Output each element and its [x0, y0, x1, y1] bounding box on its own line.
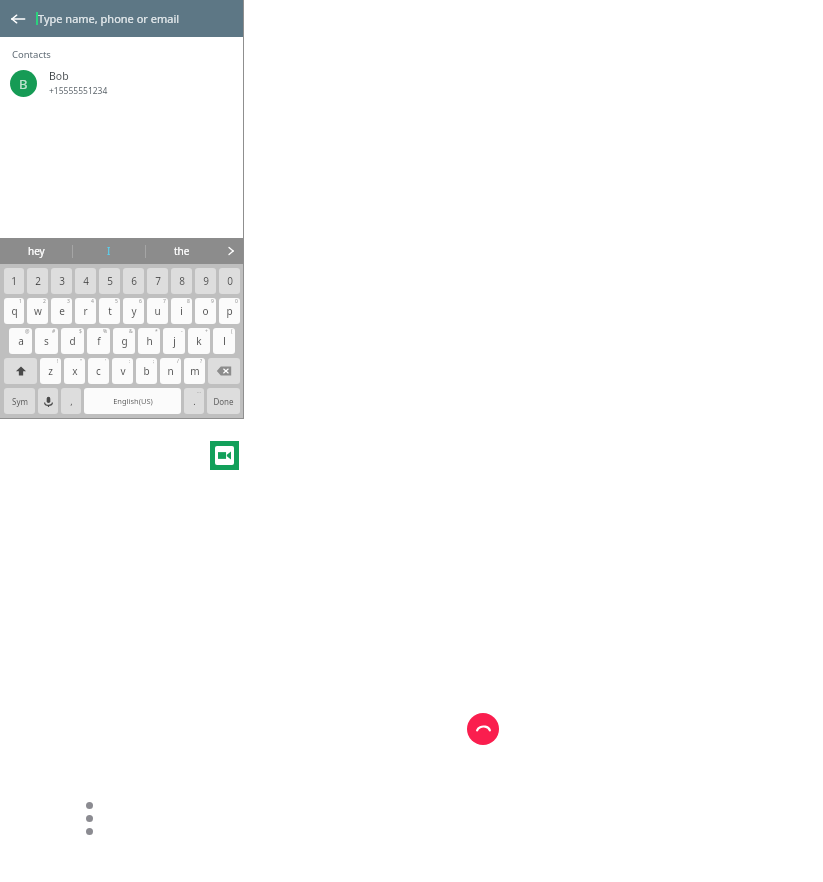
button[interactable]: ; [136, 358, 157, 384]
staticText: # [52, 328, 56, 335]
button[interactable]: $ [61, 328, 84, 354]
staticText: 5 [107, 274, 113, 288]
button[interactable]: / [160, 358, 181, 384]
staticText: m [190, 364, 200, 378]
button[interactable]: 6 [123, 298, 144, 324]
button[interactable]: - [163, 328, 185, 354]
button[interactable]: Sym [4, 388, 35, 414]
staticText: & [129, 328, 133, 335]
staticText: 3 [67, 298, 70, 305]
button[interactable]: 9 [195, 298, 216, 324]
button[interactable]: 5 [99, 298, 120, 324]
staticText: @ [25, 328, 30, 335]
button[interactable]: 8 [171, 298, 192, 324]
button[interactable]: Back [0, 1, 36, 37]
button[interactable]: Backspace [208, 358, 240, 384]
staticText: Sym [12, 396, 28, 407]
staticText: 0 [235, 298, 238, 305]
staticText: / [177, 358, 179, 365]
staticText: s [44, 334, 49, 348]
button[interactable]: 1 [4, 298, 24, 324]
button[interactable]: Type name, phone or email [36, 0, 244, 37]
staticText: ' [105, 358, 107, 365]
staticText: v [120, 364, 126, 378]
button[interactable]: @ [9, 328, 32, 354]
button[interactable]: ... [184, 388, 204, 414]
staticText: +15555551234 [49, 85, 108, 97]
staticText: i [180, 304, 183, 318]
button[interactable]: Done [207, 388, 240, 414]
staticText: k [196, 334, 202, 348]
staticText: the [174, 244, 190, 258]
staticText: e [59, 304, 65, 318]
button[interactable]: + [188, 328, 210, 354]
button[interactable]: % [87, 328, 110, 354]
button[interactable]: More options [79, 799, 100, 838]
button[interactable]: 7 [147, 268, 168, 294]
button[interactable]: 8 [171, 268, 192, 294]
staticText: z [48, 364, 53, 378]
button[interactable]: & [113, 328, 135, 354]
button[interactable]: Voice input [38, 388, 58, 414]
staticText: - [181, 328, 183, 335]
staticText: b [143, 364, 150, 378]
staticText: Bob [49, 69, 69, 83]
button[interactable]: Shift [4, 358, 37, 384]
button[interactable]: 0 [219, 268, 240, 294]
staticText: 2 [43, 298, 46, 305]
button[interactable]: 1 [4, 268, 24, 294]
button[interactable]: , [61, 388, 81, 414]
button[interactable]: * [138, 328, 160, 354]
button[interactable]: 2 [27, 298, 48, 324]
button[interactable]: I [73, 238, 145, 264]
staticText: % [103, 328, 108, 335]
staticText: English(US) [113, 396, 153, 406]
button[interactable]: 7 [147, 298, 168, 324]
button[interactable]: More suggestions [218, 238, 244, 264]
staticText: 3 [59, 274, 65, 288]
staticText: h [146, 334, 153, 348]
staticText: c [96, 364, 101, 378]
staticText: 5 [115, 298, 118, 305]
button[interactable]: Video call [210, 441, 239, 470]
button[interactable]: 9 [195, 268, 216, 294]
staticText: 1 [19, 298, 22, 305]
button[interactable]: 4 [75, 268, 96, 294]
staticText: w [34, 304, 42, 318]
button[interactable]: the [146, 238, 218, 264]
button[interactable]: 3 [51, 298, 72, 324]
staticText: 9 [211, 298, 214, 305]
staticText: Contacts [12, 48, 51, 61]
button[interactable]: 5 [99, 268, 120, 294]
button[interactable]: 3 [51, 268, 72, 294]
staticText: 2 [35, 274, 41, 288]
button[interactable]: 0 [219, 298, 240, 324]
button[interactable]: ( [213, 328, 235, 354]
staticText: 8 [187, 298, 190, 305]
staticText: d [69, 334, 76, 348]
button[interactable]: ? [184, 358, 205, 384]
button[interactable]: 2 [27, 268, 48, 294]
staticText: . [193, 395, 196, 407]
staticText: 7 [163, 298, 166, 305]
staticText: 7 [155, 274, 161, 288]
button[interactable]: End call [467, 713, 499, 745]
button[interactable]: : [112, 358, 133, 384]
staticText: I [107, 244, 111, 258]
button[interactable]: 6 [123, 268, 144, 294]
staticText: g [121, 334, 128, 348]
staticText: t [108, 304, 112, 318]
staticText: " [80, 358, 83, 365]
button[interactable]: ' [88, 358, 109, 384]
button[interactable]: " [64, 358, 85, 384]
button[interactable]: English(US) [84, 388, 181, 414]
button[interactable]: ! [40, 358, 61, 384]
staticText: ... [197, 388, 202, 395]
button[interactable]: # [35, 328, 58, 354]
staticText: 1 [11, 274, 17, 288]
button[interactable]: 4 [75, 298, 96, 324]
button[interactable]: B [0, 61, 244, 105]
button[interactable]: hey [0, 238, 72, 264]
staticText: q [11, 304, 18, 318]
